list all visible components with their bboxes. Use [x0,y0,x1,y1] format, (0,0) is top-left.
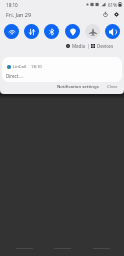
staticText: Clear [107,83,118,89]
staticText: 61% [108,2,117,8]
button[interactable]: Airplane mode [85,24,100,39]
button[interactable]: Wi-Fi [4,24,19,39]
staticText: Devices [97,43,114,49]
staticText: Direct ... [6,73,23,79]
button[interactable]: Power [101,10,110,19]
button[interactable]: Devices [89,42,116,50]
staticText: Fri, Jan 29 [6,11,32,18]
button[interactable]: Media [64,42,88,50]
button[interactable]: Recents [86,242,116,254]
button[interactable]: Notification settings [55,81,101,91]
staticText: 18:10 [6,2,18,8]
staticText: Media [72,43,86,49]
staticText: 18:10 [31,64,42,70]
button[interactable]: Clear [105,81,120,91]
button[interactable]: Mobile data [24,24,39,39]
button[interactable]: Bluetooth [44,24,59,39]
staticText: Notification settings [57,83,99,89]
button[interactable]: Location [65,24,80,39]
staticText: LinCall [13,64,27,70]
button[interactable]: Back [9,242,39,254]
button[interactable]: Settings [112,10,121,19]
button[interactable]: Home [47,242,77,254]
button[interactable]: Sound [105,24,120,39]
button[interactable]: LinCall [2,57,122,82]
